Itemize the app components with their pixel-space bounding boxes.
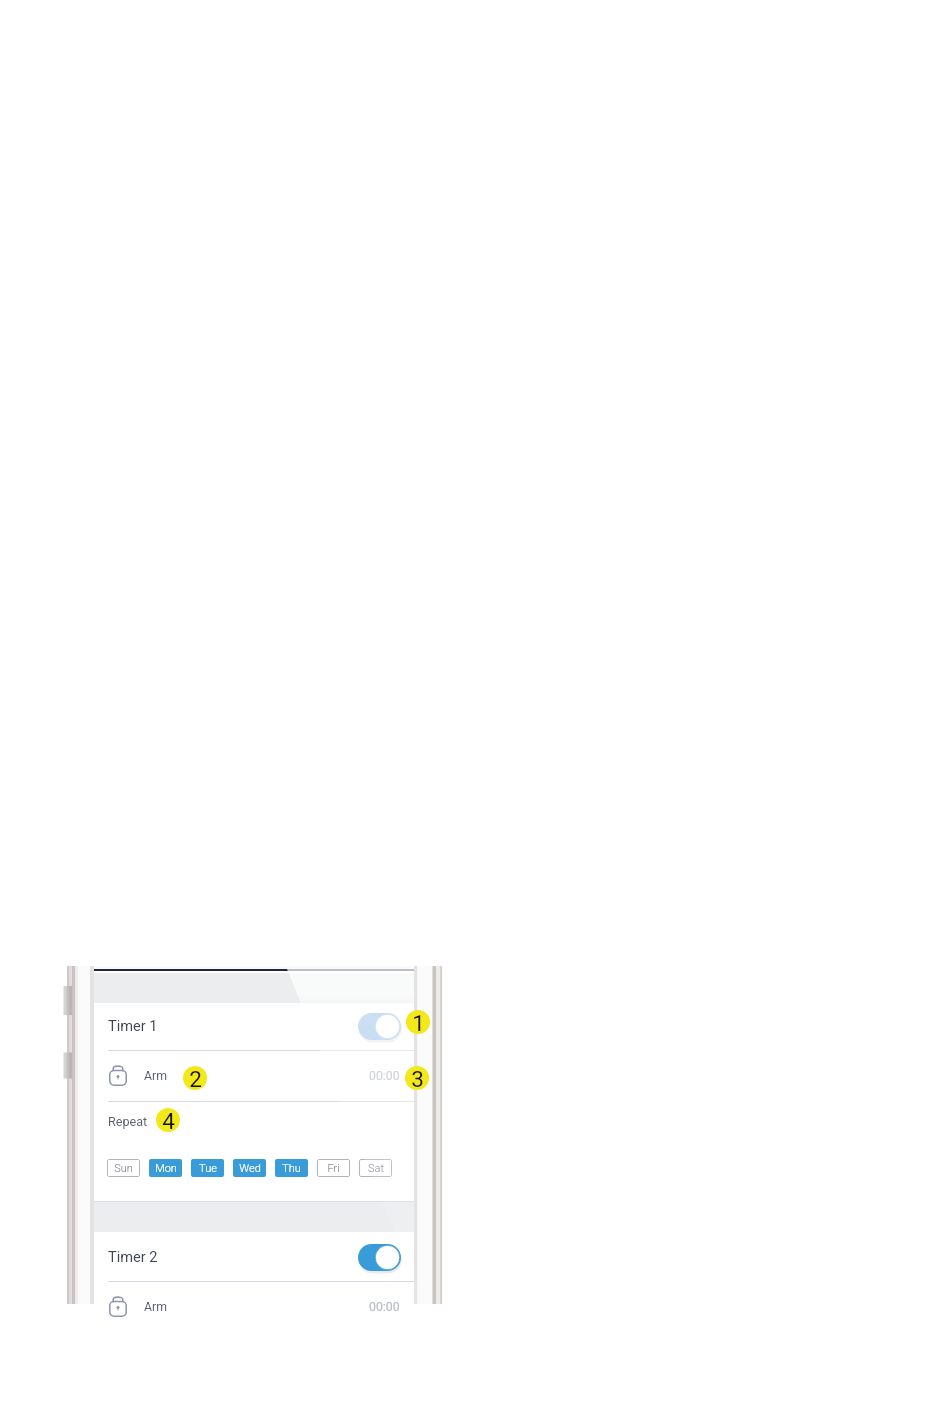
staticText: Tue bbox=[199, 1162, 217, 1175]
staticText: Fri bbox=[327, 1162, 340, 1175]
button[interactable]: Timer 1 bbox=[94, 1002, 414, 1051]
staticText: Arm bbox=[144, 1300, 167, 1314]
staticText: 00:00 bbox=[369, 1069, 400, 1083]
staticText: 00:00 bbox=[369, 1300, 400, 1314]
staticText: Wed bbox=[239, 1162, 261, 1175]
button[interactable]: Mon bbox=[149, 1159, 182, 1177]
staticText: Timer 2 bbox=[108, 1248, 158, 1265]
button[interactable]: Wed bbox=[233, 1159, 266, 1177]
button[interactable]: Lock bbox=[94, 1281, 414, 1332]
staticText: 4 bbox=[162, 1108, 175, 1132]
staticText: 2 bbox=[189, 1066, 202, 1090]
staticText: Repeat bbox=[108, 1114, 148, 1129]
other: Lock bbox=[109, 1296, 127, 1317]
staticText: Timer 1 bbox=[108, 1017, 158, 1034]
staticText: Sun bbox=[114, 1162, 133, 1175]
button[interactable]: Toggle timer bbox=[358, 1013, 401, 1040]
button[interactable]: Sat bbox=[359, 1159, 392, 1177]
staticText: Arm bbox=[144, 1069, 167, 1083]
staticText: 1 bbox=[412, 1010, 425, 1034]
button[interactable]: Fri bbox=[317, 1159, 350, 1177]
button[interactable]: Tue bbox=[191, 1159, 224, 1177]
staticText: 3 bbox=[411, 1066, 424, 1090]
button[interactable]: Sun bbox=[107, 1159, 140, 1177]
staticText: Sat bbox=[368, 1162, 384, 1175]
button[interactable]: Toggle timer bbox=[358, 1244, 401, 1271]
other: Lock bbox=[109, 1065, 127, 1086]
button[interactable]: Timer 2 bbox=[94, 1233, 414, 1282]
button[interactable]: Thu bbox=[275, 1159, 308, 1177]
button[interactable]: Lock bbox=[94, 1050, 414, 1101]
button[interactable]: Repeat bbox=[94, 1101, 414, 1140]
staticText: Thu bbox=[282, 1162, 301, 1175]
staticText: Mon bbox=[155, 1162, 177, 1175]
